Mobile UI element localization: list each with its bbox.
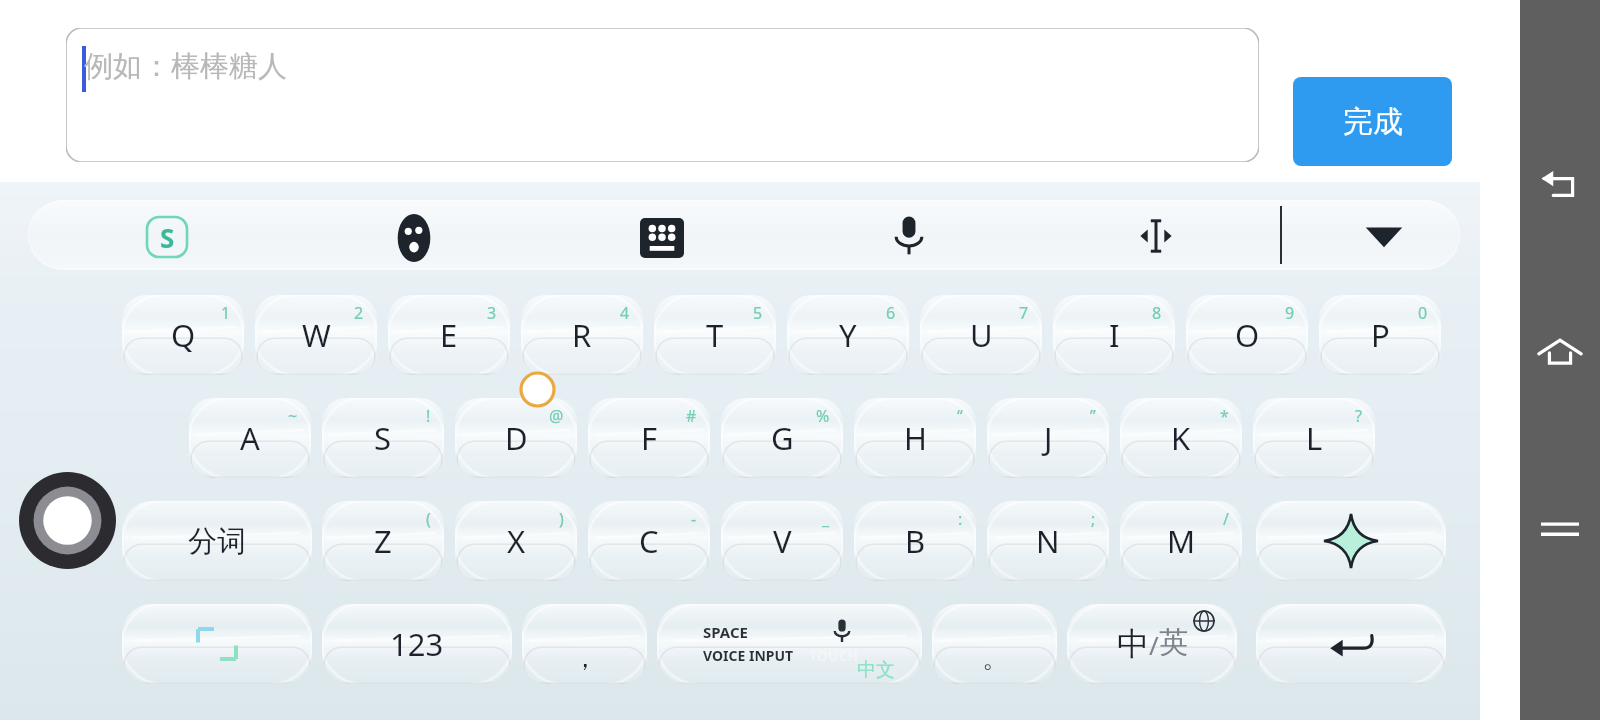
- staticText: 123: [390, 623, 444, 665]
- staticText: 2: [354, 302, 364, 324]
- button[interactable]: period: [932, 604, 1057, 684]
- staticText: ): [559, 508, 564, 530]
- button[interactable]: T: [654, 295, 776, 375]
- staticText: V: [773, 520, 792, 562]
- staticText: G: [771, 417, 794, 459]
- staticText: S: [160, 220, 175, 255]
- staticText: VOICE INPUT: [703, 646, 794, 665]
- staticText: A: [240, 417, 260, 459]
- staticText: 6: [886, 302, 896, 324]
- button[interactable]: Q: [122, 295, 244, 375]
- button[interactable]: Delete: [1256, 501, 1446, 581]
- button[interactable]: 例如：棒棒糖人: [66, 28, 1259, 162]
- button[interactable]: K: [1120, 398, 1242, 478]
- button[interactable]: Move cursor: [1130, 216, 1182, 256]
- staticText: 中: [1117, 624, 1149, 664]
- staticText: H: [904, 417, 927, 459]
- staticText: 4: [620, 302, 630, 324]
- staticText: ?: [1355, 405, 1362, 427]
- staticText: *: [1220, 405, 1229, 427]
- staticText: /: [1149, 627, 1159, 662]
- button[interactable]: U: [920, 295, 1042, 375]
- staticText: 8: [1152, 302, 1162, 324]
- button[interactable]: Sogou: [144, 214, 190, 260]
- staticText: 。: [982, 642, 1008, 675]
- button[interactable]: L: [1253, 398, 1375, 478]
- button[interactable]: Y: [787, 295, 909, 375]
- staticText: 9: [1285, 302, 1295, 324]
- button[interactable]: F: [588, 398, 710, 478]
- staticText: X: [507, 520, 526, 562]
- button[interactable]: 完成: [1293, 77, 1452, 166]
- staticText: P: [1371, 314, 1390, 356]
- staticText: (: [426, 508, 431, 530]
- staticText: 例如：棒棒糖人: [84, 48, 287, 85]
- staticText: I: [1109, 314, 1120, 356]
- button[interactable]: Assistive touch: [19, 472, 116, 569]
- button[interactable]: 中英切换: [1067, 604, 1237, 684]
- staticText: 0: [1418, 302, 1428, 324]
- staticText: 7: [1019, 302, 1029, 324]
- button[interactable]: D: [455, 398, 577, 478]
- button[interactable]: Back: [1520, 147, 1600, 227]
- staticText: 5: [753, 302, 763, 324]
- button[interactable]: comma: [522, 604, 647, 684]
- staticText: “: [957, 405, 963, 427]
- button[interactable]: 分词: [122, 501, 312, 581]
- button[interactable]: Enter: [1256, 604, 1446, 684]
- button[interactable]: S: [322, 398, 444, 478]
- staticText: :: [958, 508, 963, 530]
- button[interactable]: W: [255, 295, 377, 375]
- button[interactable]: N: [987, 501, 1109, 581]
- button[interactable]: I: [1053, 295, 1175, 375]
- staticText: ”: [1090, 405, 1096, 427]
- staticText: SPACE: [703, 622, 748, 642]
- staticText: S: [374, 417, 392, 459]
- button[interactable]: H: [854, 398, 976, 478]
- staticText: Q: [171, 314, 196, 356]
- button[interactable]: C: [588, 501, 710, 581]
- button[interactable]: P: [1319, 295, 1441, 375]
- staticText: 英: [1159, 624, 1188, 661]
- button[interactable]: Hide keyboard: [1360, 220, 1408, 254]
- staticText: N: [1036, 520, 1060, 562]
- button[interactable]: R: [521, 295, 643, 375]
- button[interactable]: J: [987, 398, 1109, 478]
- button[interactable]: 123: [322, 604, 512, 684]
- staticText: 中文: [857, 658, 895, 682]
- staticText: #: [686, 405, 697, 427]
- staticText: 分词: [188, 523, 246, 560]
- staticText: C: [639, 520, 659, 562]
- button[interactable]: Voice input: [886, 212, 932, 258]
- button[interactable]: Emoji: [390, 214, 438, 262]
- button[interactable]: A: [189, 398, 311, 478]
- button[interactable]: V: [721, 501, 843, 581]
- staticText: O: [1235, 314, 1260, 356]
- button[interactable]: X: [455, 501, 577, 581]
- button[interactable]: O: [1186, 295, 1308, 375]
- button[interactable]: Keyboard layout: [640, 218, 684, 258]
- staticText: B: [905, 520, 926, 562]
- staticText: U: [970, 314, 993, 356]
- button[interactable]: Menu: [1520, 490, 1600, 570]
- button[interactable]: Symbols panel: [122, 604, 312, 684]
- button[interactable]: M: [1120, 501, 1242, 581]
- button[interactable]: G: [721, 398, 843, 478]
- staticText: E: [440, 314, 458, 356]
- staticText: W: [302, 314, 331, 356]
- staticText: !: [426, 405, 431, 427]
- staticText: R: [572, 314, 592, 356]
- button[interactable]: B: [854, 501, 976, 581]
- button[interactable]: Z: [322, 501, 444, 581]
- staticText: D: [505, 417, 528, 459]
- staticText: ;: [1091, 508, 1096, 530]
- button[interactable]: Space: [657, 604, 922, 684]
- staticText: J: [1044, 417, 1053, 459]
- staticText: L: [1306, 417, 1323, 459]
- button[interactable]: E: [388, 295, 510, 375]
- staticText: %: [816, 405, 830, 427]
- staticText: TOUCH: [809, 646, 859, 665]
- staticText: ~: [288, 405, 298, 427]
- button[interactable]: Home: [1520, 312, 1600, 392]
- staticText: _: [822, 508, 830, 530]
